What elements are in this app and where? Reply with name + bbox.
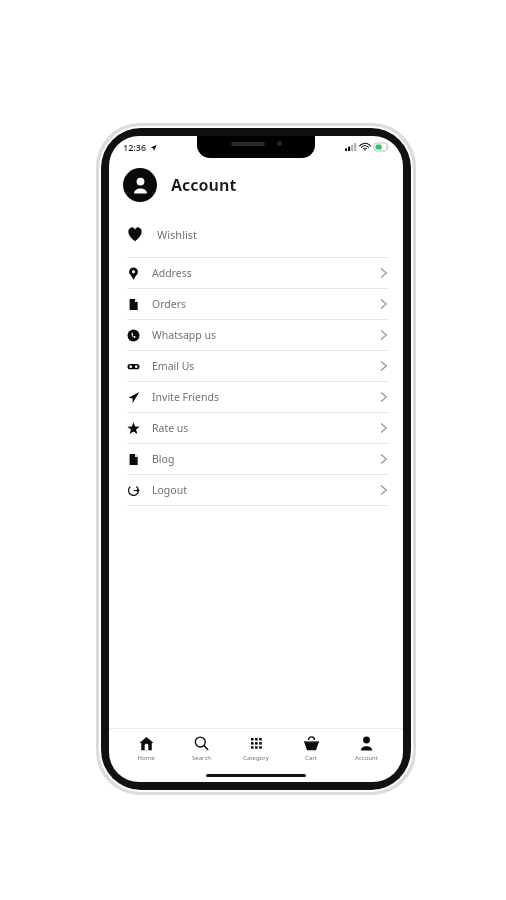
staticText: Account (171, 174, 237, 196)
staticText: Address (152, 266, 192, 280)
staticText: Search (192, 754, 211, 762)
button[interactable]: Wishlist (127, 220, 389, 248)
staticText: Invite Friends (152, 390, 219, 404)
staticText: Logout (152, 483, 187, 497)
staticText: Home (137, 754, 155, 762)
button[interactable]: Blog (127, 444, 387, 474)
staticText: Cart (305, 754, 317, 762)
button[interactable]: Search (175, 736, 227, 762)
button[interactable]: Cart (285, 736, 337, 762)
staticText: Orders (152, 297, 187, 311)
button[interactable]: Address (127, 258, 387, 288)
staticText: Email Us (152, 359, 195, 373)
button[interactable]: Account (123, 164, 389, 206)
button[interactable]: Home (120, 736, 172, 762)
button[interactable]: Account (340, 736, 392, 762)
button[interactable]: Whatsapp us (127, 320, 387, 350)
button[interactable]: Invite Friends (127, 382, 387, 412)
button[interactable]: Logout (127, 475, 387, 505)
button[interactable]: Rate us (127, 413, 387, 443)
staticText: Wishlist (157, 227, 198, 242)
staticText: 12:36 (123, 141, 147, 153)
staticText: Blog (152, 452, 175, 466)
button[interactable]: Category (230, 736, 282, 762)
button[interactable]: Email Us (127, 351, 387, 381)
staticText: Whatsapp us (152, 328, 217, 342)
staticText: Rate us (152, 421, 189, 435)
staticText: Category (243, 754, 269, 762)
button[interactable]: Orders (127, 289, 387, 319)
staticText: Account (355, 754, 378, 762)
